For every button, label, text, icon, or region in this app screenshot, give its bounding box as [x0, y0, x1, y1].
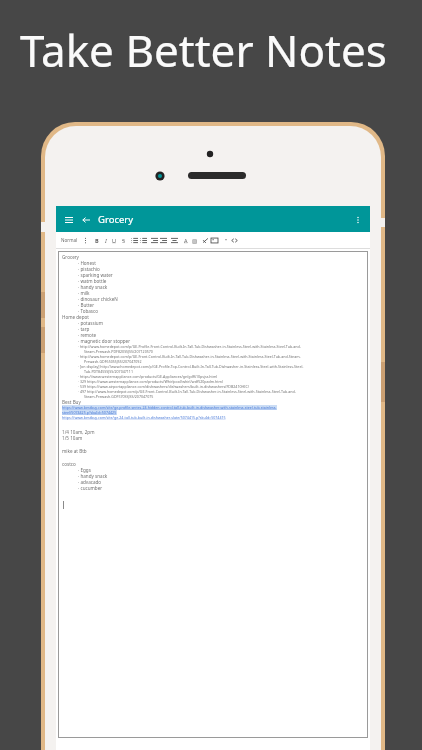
- staticText: · dinosaur chickeN: [78, 296, 118, 302]
- button[interactable]: Format tool: [130, 236, 139, 245]
- button[interactable]: Format tool: [210, 236, 219, 245]
- staticText: · magnetic door stopper: [78, 338, 131, 344]
- staticText: · remote: [78, 332, 97, 338]
- button[interactable]: More options: [351, 213, 364, 226]
- staticText: 1/5 10am: [62, 435, 83, 441]
- button[interactable]: U: [110, 236, 119, 245]
- staticText: · 497 http://www.homedepot.com/p/GE-Fron…: [78, 389, 296, 394]
- staticText: · advacado: [78, 479, 102, 485]
- staticText: mike at Btb: [62, 448, 87, 454]
- button[interactable]: S: [119, 236, 128, 245]
- staticText: · Butter: [78, 302, 95, 308]
- staticText: Best Buy: [62, 399, 81, 405]
- button[interactable]: Format tool: [81, 236, 90, 245]
- button[interactable]: Format tool: [159, 236, 168, 245]
- button[interactable]: Back: [79, 213, 92, 226]
- staticText: · tarp: [78, 326, 90, 332]
- staticText: Steam-Prewash-GDF570SSJSS/207047075: [84, 394, 154, 399]
- staticText: · [on display] http://www.homedepot.com/…: [78, 364, 304, 369]
- staticText: https://www.bestbuy.com/site/ge-24-tall-…: [62, 415, 226, 420]
- staticText: steel/5074425.p?skuId=5074425: [62, 410, 117, 415]
- staticText: · watm bottle: [78, 278, 107, 284]
- staticText: · Honest: [78, 260, 96, 266]
- staticText: · 539 https://www.airportappliance.com/d…: [78, 384, 249, 389]
- button[interactable]: B: [92, 236, 101, 245]
- staticText: · pistachio: [78, 266, 100, 272]
- staticText: · milk: [78, 290, 90, 296]
- staticText: · Tobasco: [78, 308, 99, 314]
- staticText: 1/4 10am, 2pm: [62, 429, 95, 435]
- button[interactable]: Format tool: [139, 236, 148, 245]
- staticText: costco: [62, 461, 76, 467]
- staticText: U: [112, 237, 117, 244]
- button[interactable]: ▨: [190, 236, 199, 245]
- staticText: · https://www.westernappliance.com/produ…: [78, 374, 218, 379]
- staticText: · http://www.homedepot.com/p/GE-Profile-…: [78, 344, 301, 349]
- staticText: Home depot: [62, 314, 89, 320]
- button[interactable]: ”: [221, 236, 230, 245]
- button[interactable]: A: [181, 236, 190, 245]
- staticText: · handy snack: [78, 284, 108, 290]
- staticText: ”: [225, 237, 227, 244]
- staticText: · http://www.homedepot.com/p/GE-Front-Co…: [78, 354, 301, 359]
- staticText: · Eggs: [78, 467, 91, 473]
- staticText: ▨: [192, 238, 198, 244]
- staticText: A: [184, 237, 188, 244]
- staticText: · sparking water: [78, 272, 113, 278]
- staticText: · potassium: [78, 320, 103, 326]
- staticText: Tub-PDT845SSJSS/207047111: [84, 369, 133, 374]
- staticText: Prewash-GDF650SSJSS/207047092: [84, 359, 142, 364]
- button[interactable]: Format tool: [170, 236, 179, 245]
- button[interactable]: I: [101, 236, 110, 245]
- staticText: · handy snack: [78, 473, 108, 479]
- button[interactable]: Format tool: [230, 236, 239, 245]
- staticText: https://www.bestbuy.com/site/ge-profile-…: [62, 405, 277, 410]
- staticText: · 329 https://www.westernappliance.com/p…: [78, 379, 223, 384]
- staticText: · cucumber: [78, 485, 103, 491]
- staticText: Grocery: [62, 254, 79, 260]
- button[interactable]: Format tool: [150, 236, 159, 245]
- staticText: Steam-Prewash-PDF820SSJSS/207120570: [84, 349, 153, 354]
- button[interactable]: Format tool: [201, 236, 210, 245]
- staticText: Grocery: [98, 213, 134, 226]
- staticText: B: [95, 237, 99, 244]
- button[interactable]: Grocery: [62, 254, 365, 738]
- staticText: Take Better Notes: [20, 20, 387, 80]
- button[interactable]: Menu: [62, 213, 75, 226]
- button[interactable]: Normal: [61, 237, 78, 243]
- staticText: S: [122, 237, 126, 244]
- staticText: I: [105, 237, 107, 244]
